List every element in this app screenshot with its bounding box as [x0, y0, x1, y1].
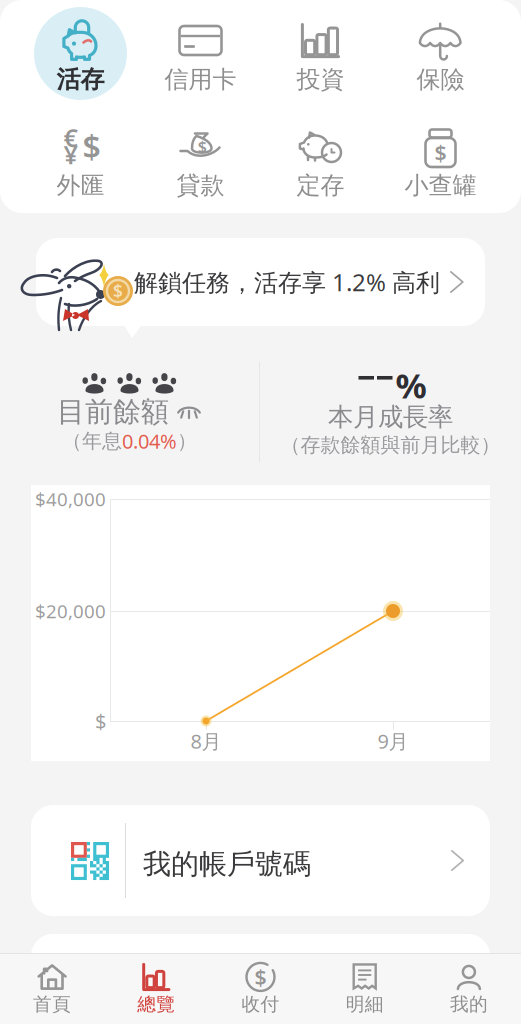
- staticText: （年息: [62, 429, 122, 453]
- staticText: $: [198, 136, 207, 157]
- staticText: $: [82, 125, 100, 168]
- staticText: 保險: [416, 65, 464, 94]
- button[interactable]: €: [20, 111, 140, 207]
- staticText: 定存: [296, 171, 344, 200]
- staticText: 本月成長率: [328, 401, 453, 432]
- staticText: €: [63, 121, 77, 154]
- staticText: 9月: [377, 728, 408, 754]
- staticText: 投資: [296, 65, 344, 94]
- staticText: 貸款: [176, 171, 224, 200]
- staticText: 明細: [346, 993, 384, 1016]
- button[interactable]: $: [208, 954, 313, 1024]
- button[interactable]: 首頁: [0, 954, 104, 1024]
- staticText: 活存: [56, 65, 104, 94]
- staticText: $: [254, 963, 266, 991]
- button[interactable]: $: [36, 246, 485, 334]
- button[interactable]: 明細: [313, 954, 417, 1024]
- staticText: 外匯: [56, 171, 104, 200]
- staticText: 8月: [190, 728, 221, 754]
- staticText: ¥: [63, 138, 77, 171]
- staticText: 0.04%: [122, 428, 177, 454]
- staticText: 小查罐: [404, 171, 476, 200]
- staticText: 我的: [450, 993, 488, 1016]
- staticText: 信用卡: [164, 65, 236, 94]
- button[interactable]: 保險: [380, 5, 500, 101]
- button[interactable]: 定存: [260, 111, 380, 207]
- button[interactable]: 總覽: [104, 954, 208, 1024]
- staticText: 收付: [241, 993, 279, 1016]
- staticText: %: [395, 362, 426, 408]
- staticText: 目前餘額: [57, 395, 169, 429]
- staticText: 總覽: [137, 993, 175, 1016]
- button[interactable]: 我的: [417, 954, 521, 1024]
- staticText: ）: [177, 429, 197, 453]
- button[interactable]: 信用卡: [140, 5, 260, 101]
- button[interactable]: 活存: [20, 5, 140, 101]
- staticText: 首頁: [33, 993, 71, 1016]
- button[interactable]: $: [140, 111, 260, 207]
- button[interactable]: 我的帳戶號碼: [31, 805, 490, 916]
- staticText: $: [95, 708, 106, 734]
- button[interactable]: 投資: [260, 5, 380, 101]
- staticText: $: [113, 279, 123, 302]
- staticText: （存款餘額與前月比較）: [280, 433, 500, 457]
- staticText: $: [434, 138, 446, 167]
- staticText: 解鎖任務，活存享 1.2% 高利: [134, 266, 440, 298]
- staticText: $20,000: [35, 599, 106, 623]
- staticText: 我的帳戶號碼: [143, 847, 311, 881]
- staticText: $40,000: [35, 487, 106, 511]
- button[interactable]: $: [380, 111, 500, 207]
